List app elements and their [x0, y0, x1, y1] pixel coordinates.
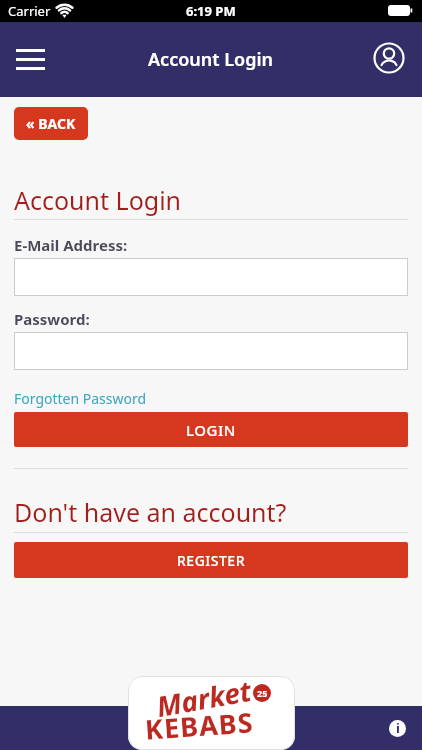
button[interactable]	[373, 42, 405, 74]
button[interactable]: Market	[128, 676, 295, 750]
button[interactable]: « BACK	[14, 107, 88, 140]
staticText: Forgotten Password	[14, 389, 147, 408]
staticText: E-Mail Address:	[14, 235, 128, 255]
staticText: Don't have an account?	[14, 495, 287, 529]
button[interactable]	[14, 258, 408, 296]
button[interactable]: Forgotten Password	[14, 388, 147, 408]
button[interactable]	[16, 49, 45, 70]
staticText: Password:	[14, 309, 90, 329]
button[interactable]	[14, 332, 408, 370]
staticText: i	[396, 720, 400, 736]
button[interactable]: REGISTER	[14, 542, 408, 578]
staticText: Account Login	[14, 183, 182, 217]
staticText: Market	[153, 676, 254, 725]
staticText: KEBABS	[144, 703, 255, 748]
staticText: « BACK	[26, 114, 76, 133]
button[interactable]: LOGIN	[14, 412, 408, 447]
button[interactable]: i	[389, 720, 406, 737]
staticText: LOGIN	[186, 420, 236, 440]
staticText: REGISTER	[177, 551, 245, 570]
staticText: 25	[257, 687, 268, 699]
staticText: Account Login	[148, 47, 274, 72]
staticText: 6:19 PM	[186, 2, 236, 20]
staticText: Carrier	[8, 2, 51, 20]
